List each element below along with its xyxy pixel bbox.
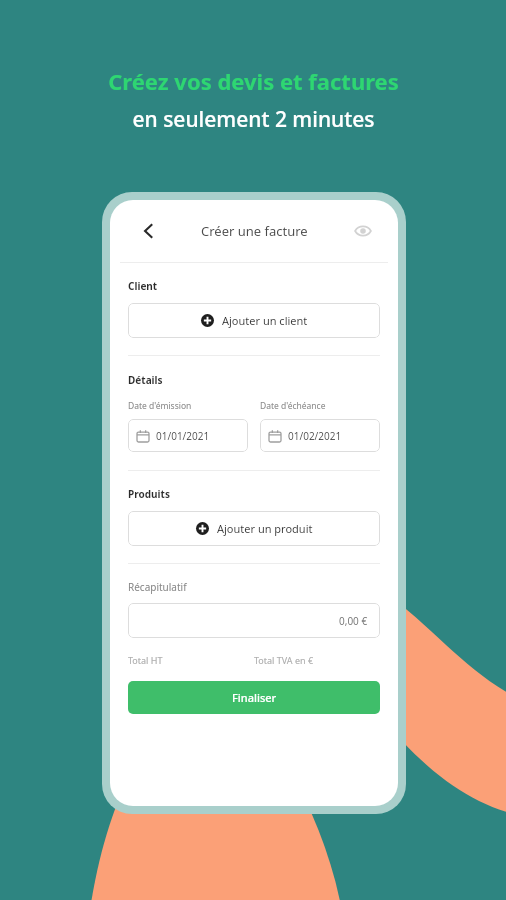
staticText: Produits xyxy=(128,487,170,501)
staticText: Détails xyxy=(128,373,163,387)
staticText: Finaliser xyxy=(232,690,277,705)
button[interactable]: 01/01/2021 xyxy=(128,419,248,452)
staticText: Date d'émission xyxy=(128,400,192,412)
staticText: Ajouter un client xyxy=(222,313,308,328)
staticText: 01/02/2021 xyxy=(288,429,342,443)
button[interactable]: Finaliser xyxy=(128,681,380,714)
button[interactable]: 0,00 € xyxy=(128,603,380,638)
staticText: Total TVA en € xyxy=(254,654,380,666)
button[interactable]: 01/02/2021 xyxy=(260,419,380,452)
staticText: Récapitulatif xyxy=(128,580,187,594)
staticText: Total HT xyxy=(128,654,254,666)
staticText: 01/01/2021 xyxy=(156,429,210,443)
staticText: en seulement 2 minutes xyxy=(132,105,375,134)
staticText: Créez vos devis et factures xyxy=(108,66,399,96)
button[interactable]: Ajouter un produit xyxy=(128,511,380,546)
staticText: Créer une facture xyxy=(201,222,308,240)
button[interactable]: Aperçu xyxy=(346,214,380,248)
button[interactable]: Retour xyxy=(132,214,166,248)
staticText: 0,00 € xyxy=(339,614,368,628)
staticText: Client xyxy=(128,279,158,293)
button[interactable]: Ajouter un client xyxy=(128,303,380,338)
staticText: Date d'échéance xyxy=(260,400,326,412)
staticText: Ajouter un produit xyxy=(217,521,313,536)
